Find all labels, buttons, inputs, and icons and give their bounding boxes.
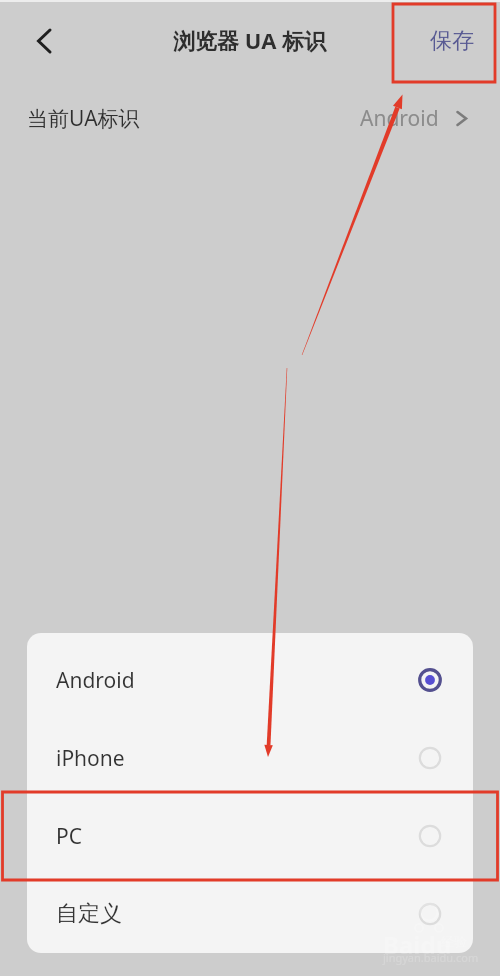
staticText: jingyan.baidu.com (383, 950, 479, 965)
staticText: Android (56, 666, 135, 695)
button[interactable]: 保存 (422, 21, 482, 61)
staticText: 自定义 (56, 900, 122, 928)
button[interactable]: Back (20, 19, 64, 63)
button[interactable]: 当前UA标识 (0, 90, 500, 147)
button[interactable]: 自定义 (27, 875, 473, 953)
staticText: iPhone (56, 744, 125, 773)
button[interactable]: PC (27, 797, 473, 875)
staticText: 保存 (430, 27, 474, 55)
staticText: Baidu (383, 928, 452, 961)
staticText: PC (56, 822, 82, 851)
staticText: Android (360, 104, 439, 133)
button[interactable]: Android (27, 641, 473, 719)
staticText: 当前UA标识 (27, 104, 140, 133)
staticText: 浏览器 UA 标识 (173, 25, 327, 55)
button[interactable]: iPhone (27, 719, 473, 797)
